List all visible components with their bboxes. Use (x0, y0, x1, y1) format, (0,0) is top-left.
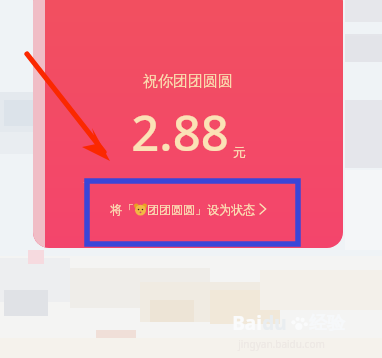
staticText: 团团圆圆」设为状态 (147, 202, 255, 217)
staticText: 将「 (110, 202, 134, 217)
staticText: jingyan.baidu.com (238, 337, 325, 351)
staticText: 祝你团团圆圆 (143, 72, 233, 91)
staticText: 经验 (309, 312, 345, 335)
staticText: 元 (233, 144, 246, 160)
button[interactable]: 将「 (83, 183, 293, 235)
staticText: 2.88 (131, 99, 229, 166)
staticText: Bai (232, 310, 262, 336)
staticText: du (262, 310, 287, 336)
